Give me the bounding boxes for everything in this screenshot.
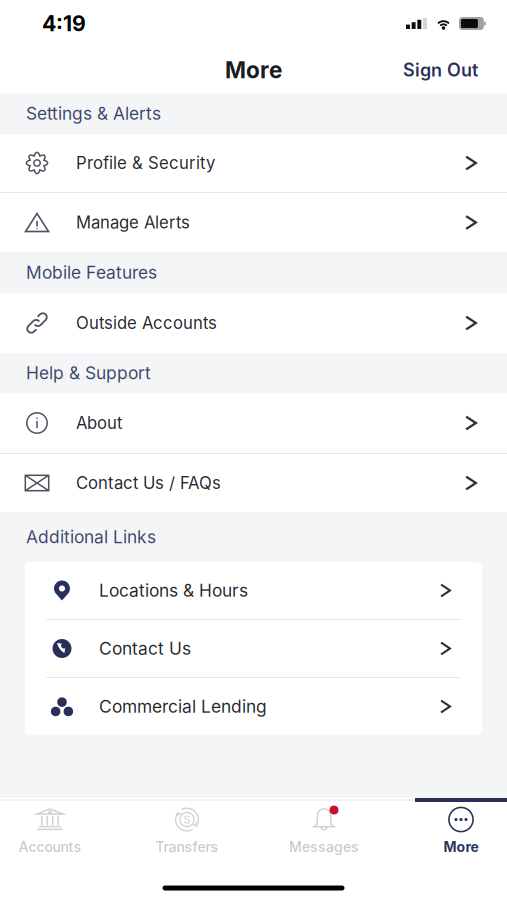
staticText: Additional Links (26, 526, 156, 547)
staticText: Mobile Features (26, 262, 157, 283)
button[interactable]: Contact Us (25, 620, 482, 677)
staticText: Settings & Alerts (26, 103, 161, 124)
staticText: More (225, 56, 282, 84)
button[interactable]: Locations & Hours (25, 562, 482, 619)
staticText: Contact Us (99, 638, 191, 659)
button[interactable]: Commercial Lending (25, 678, 482, 735)
button[interactable]: About (0, 393, 507, 453)
button[interactable]: More (415, 804, 507, 858)
staticText: 4:19 (42, 11, 86, 36)
staticText: More (443, 838, 478, 855)
staticText: Locations & Hours (99, 580, 248, 601)
button[interactable]: Sign Out (403, 49, 507, 91)
staticText: Contact Us / FAQs (76, 473, 221, 493)
staticText: Accounts (18, 838, 81, 855)
staticText: Commercial Lending (99, 696, 267, 717)
staticText: S (183, 813, 190, 826)
button[interactable]: Profile & Security (0, 134, 507, 192)
staticText: Outside Accounts (76, 313, 217, 333)
staticText: Sign Out (403, 59, 478, 81)
button[interactable]: Manage Alerts (0, 193, 507, 252)
button[interactable]: Accounts (4, 804, 96, 858)
staticText: About (76, 413, 122, 433)
button[interactable]: S (141, 804, 233, 858)
staticText: Profile & Security (76, 153, 215, 173)
staticText: Transfers (155, 838, 218, 855)
button[interactable]: Contact Us / FAQs (0, 454, 507, 512)
button[interactable]: Messages (278, 804, 370, 858)
button[interactable]: Outside Accounts (0, 293, 507, 353)
staticText: Manage Alerts (76, 212, 190, 233)
staticText: Help & Support (26, 362, 151, 383)
staticText: Messages (289, 838, 359, 855)
